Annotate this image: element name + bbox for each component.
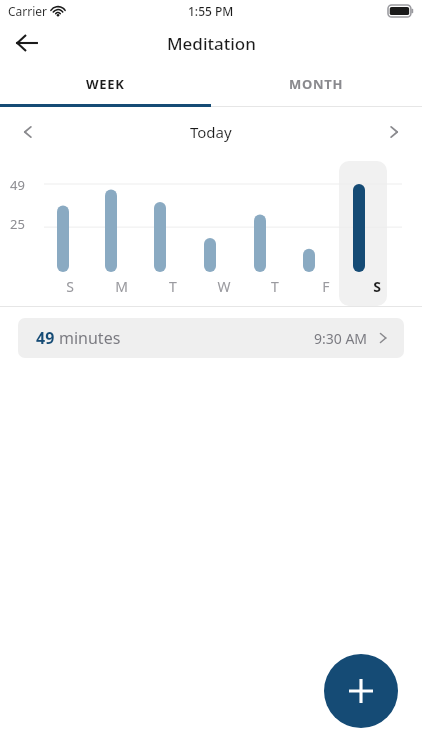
staticText: T: [271, 277, 279, 296]
staticText: W: [217, 277, 231, 296]
staticText: 25: [10, 215, 25, 233]
button[interactable]: Add session: [324, 654, 398, 728]
staticText: minutes: [59, 327, 121, 349]
button[interactable]: MONTH: [211, 64, 422, 104]
button[interactable]: Next week: [376, 114, 412, 150]
staticText: Today: [190, 122, 232, 142]
staticText: Meditation: [167, 32, 256, 55]
button[interactable]: WEEK: [0, 64, 211, 104]
staticText: 49: [10, 176, 25, 194]
staticText: T: [169, 277, 177, 296]
staticText: S: [373, 277, 381, 296]
staticText: F: [322, 277, 330, 296]
staticText: 9:30 AM: [314, 329, 368, 348]
staticText: 49: [36, 327, 55, 349]
staticText: M: [115, 277, 128, 296]
staticText: S: [66, 277, 74, 296]
staticText: Carrier: [8, 3, 48, 19]
staticText: MONTH: [289, 75, 344, 93]
staticText: WEEK: [86, 75, 125, 93]
button[interactable]: Previous week: [10, 114, 46, 150]
button[interactable]: Back: [8, 24, 46, 62]
staticText: 1:55 PM: [188, 3, 234, 19]
button[interactable]: 49: [18, 318, 404, 358]
